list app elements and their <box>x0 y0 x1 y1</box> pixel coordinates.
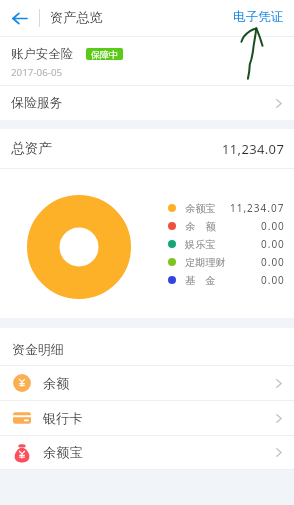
staticText: 0.00 <box>261 255 285 269</box>
staticText: 2017-06-05 <box>11 66 63 79</box>
staticText: 余额宝 <box>43 444 83 461</box>
staticText: 余额宝 <box>185 202 216 215</box>
staticText: 总资产 <box>11 140 53 157</box>
staticText: 11,234.07 <box>222 140 285 158</box>
staticText: 账户安全险 <box>11 46 73 62</box>
button[interactable]: Back <box>0 0 39 36</box>
staticText: 资产总览 <box>50 9 103 26</box>
staticText: 余额 <box>43 375 70 392</box>
staticText: 0.00 <box>261 273 285 287</box>
button[interactable]: 保险服务 <box>0 86 294 120</box>
staticText: 娱乐宝 <box>185 238 216 251</box>
staticText: 保险服务 <box>11 95 63 111</box>
staticText: 0.00 <box>261 237 285 251</box>
button[interactable]: 余额 <box>0 366 294 400</box>
button[interactable]: 账户安全险 <box>0 37 294 85</box>
button[interactable]: 电子凭证 <box>219 1 294 33</box>
staticText: 11,234.07 <box>230 201 285 215</box>
button[interactable]: 银行卡 <box>0 401 294 435</box>
button[interactable]: 余额宝 <box>0 436 294 469</box>
staticText: 资金明细 <box>12 342 64 358</box>
staticText: 保障中 <box>91 49 118 60</box>
staticText: 余 额 <box>185 219 216 233</box>
staticText: 定期理财 <box>185 256 226 269</box>
staticText: 0.00 <box>261 219 285 233</box>
staticText: 基 金 <box>185 273 216 287</box>
staticText: 银行卡 <box>43 410 83 427</box>
staticText: 电子凭证 <box>233 9 284 25</box>
